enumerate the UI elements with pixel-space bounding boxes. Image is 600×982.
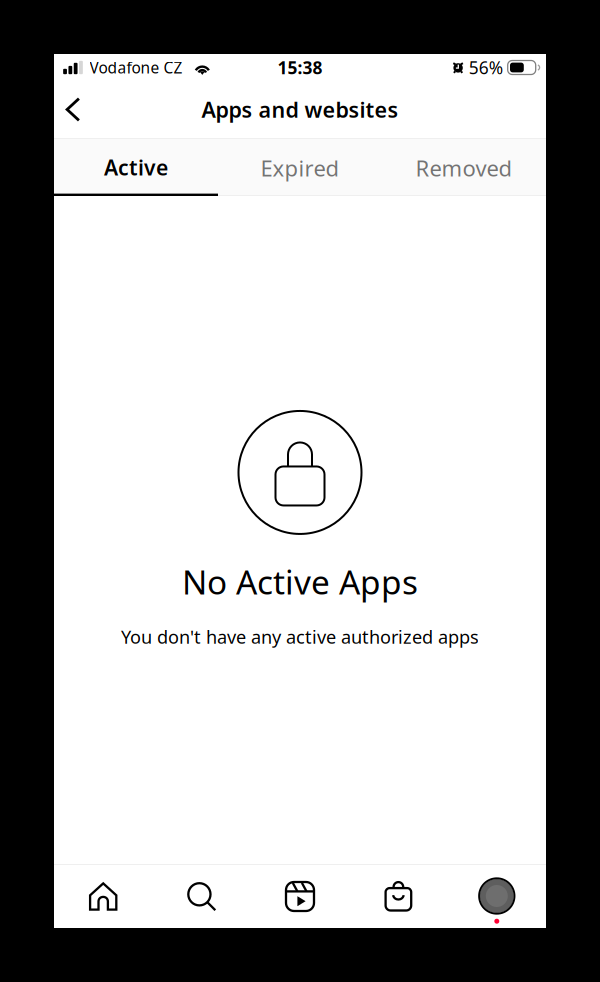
button[interactable]: Reels xyxy=(251,865,349,928)
staticText: Active xyxy=(104,153,168,182)
button[interactable]: Removed xyxy=(382,138,546,196)
staticText: Apps and websites xyxy=(201,95,398,124)
staticText: 56% xyxy=(469,56,503,79)
staticText: No Active Apps xyxy=(182,559,418,604)
staticText: 15:38 xyxy=(277,56,322,79)
button[interactable]: Active xyxy=(54,138,218,196)
staticText: You don't have any active authorized app… xyxy=(121,624,479,649)
staticText: Vodafone CZ xyxy=(89,57,182,78)
staticText: Removed xyxy=(415,153,512,183)
button[interactable]: Profile xyxy=(448,865,546,928)
button[interactable]: Search xyxy=(152,865,251,928)
button[interactable]: Expired xyxy=(218,138,382,196)
staticText: Expired xyxy=(260,153,339,183)
button[interactable]: Home xyxy=(54,865,152,928)
button[interactable]: Back xyxy=(54,85,92,133)
button[interactable]: Shop xyxy=(349,865,448,928)
